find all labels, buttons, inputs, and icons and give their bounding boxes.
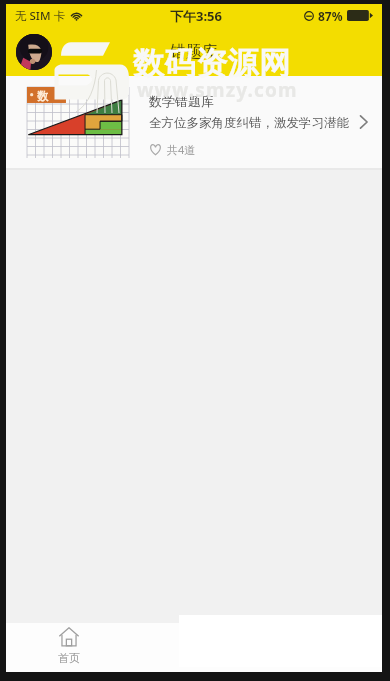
button[interactable]: Profile [16, 34, 52, 70]
staticText: 87% [318, 8, 343, 24]
staticText: 数 [37, 89, 48, 103]
staticText: 共4道 [167, 142, 196, 157]
staticText: 数学错题库 [149, 93, 214, 109]
staticText: 数码资源网 [133, 44, 291, 83]
staticText: www.smzy.com [137, 77, 298, 103]
button[interactable]: 数 [6, 76, 382, 168]
staticText: 下午3:56 [170, 7, 222, 25]
staticText: 首页 [58, 651, 80, 665]
button[interactable]: 首页 [58, 626, 80, 665]
staticText: 错题库 [170, 42, 218, 62]
staticText: 无 SIM 卡 [15, 8, 65, 24]
staticText: 全方位多家角度纠错，激发学习潜能 [149, 115, 349, 131]
